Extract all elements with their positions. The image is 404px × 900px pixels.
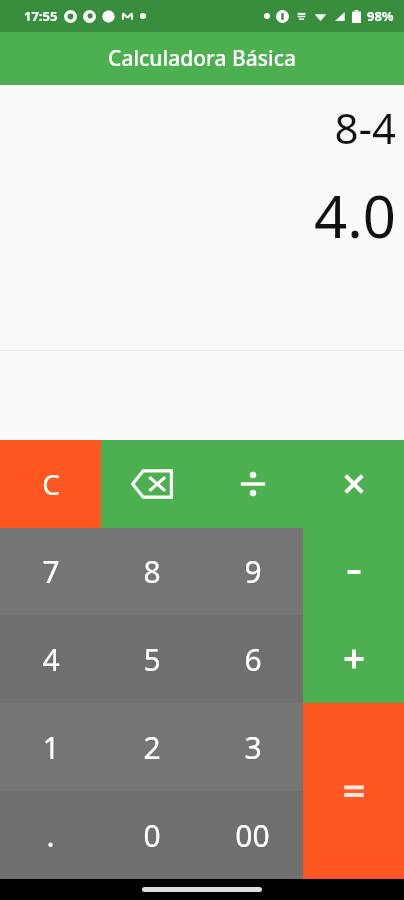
- staticText: 0: [143, 815, 161, 856]
- button[interactable]: 4: [0, 615, 101, 703]
- button[interactable]: 00: [202, 791, 303, 879]
- button[interactable]: 9: [202, 528, 303, 615]
- button[interactable]: 0: [101, 791, 202, 879]
- staticText: 2: [143, 727, 161, 768]
- button[interactable]: Backspace: [101, 440, 202, 528]
- staticText: 9: [244, 551, 262, 592]
- staticText: 4: [42, 639, 60, 680]
- staticText: 1: [42, 727, 60, 768]
- staticText: 8: [143, 551, 161, 592]
- staticText: 98%: [367, 7, 394, 25]
- button[interactable]: .: [0, 791, 101, 879]
- staticText: .: [46, 815, 55, 856]
- button[interactable]: Plus: [303, 615, 404, 703]
- staticText: 5: [143, 639, 161, 680]
- staticText: 00: [235, 815, 270, 856]
- button[interactable]: 3: [202, 703, 303, 791]
- staticText: Calculadora Básica: [108, 44, 296, 73]
- button[interactable]: Equals: [303, 703, 404, 879]
- staticText: 8-4: [334, 99, 396, 156]
- staticText: 17:55: [24, 7, 58, 25]
- button[interactable]: Multiply: [303, 440, 404, 528]
- button[interactable]: Minus: [303, 528, 404, 615]
- button[interactable]: 8: [101, 528, 202, 615]
- button[interactable]: 5: [101, 615, 202, 703]
- staticText: 4.0: [314, 176, 396, 255]
- button[interactable]: C: [0, 440, 101, 528]
- staticText: C: [42, 465, 60, 503]
- staticText: 7: [42, 551, 60, 592]
- button[interactable]: 1: [0, 703, 101, 791]
- button[interactable]: 2: [101, 703, 202, 791]
- button[interactable]: 6: [202, 615, 303, 703]
- button[interactable]: Divide: [202, 440, 303, 528]
- staticText: 6: [244, 639, 262, 680]
- button[interactable]: 7: [0, 528, 101, 615]
- staticText: 3: [244, 727, 262, 768]
